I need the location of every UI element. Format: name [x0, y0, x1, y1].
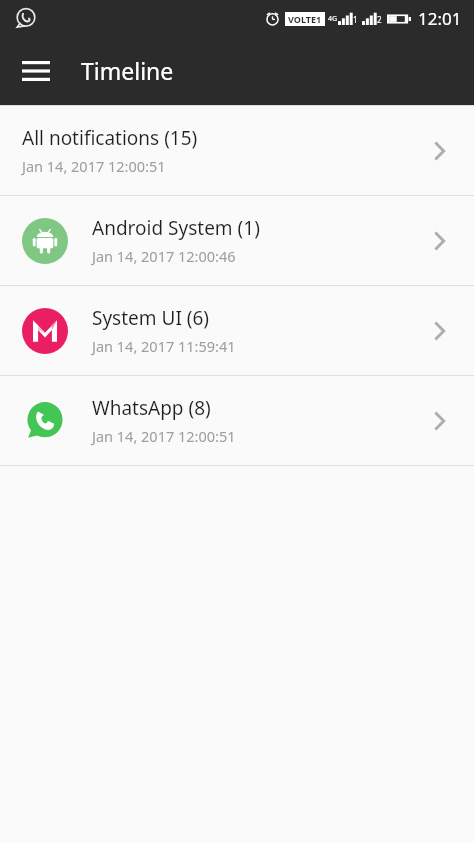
button[interactable]: System UI (6): [0, 286, 474, 375]
staticText: 2: [377, 14, 382, 25]
staticText: All notifications (15): [22, 125, 198, 151]
staticText: Jan 14, 2017 12:00:51: [92, 426, 236, 446]
button[interactable]: All notifications (15): [0, 106, 474, 195]
staticText: Jan 14, 2017 12:00:51: [22, 156, 166, 176]
staticText: 1: [353, 14, 358, 25]
staticText: 4G: [328, 14, 338, 24]
staticText: 12:01: [418, 7, 462, 30]
staticText: VOLTE1: [288, 13, 322, 25]
staticText: WhatsApp (8): [92, 395, 211, 421]
button[interactable]: Android System (1): [0, 196, 474, 285]
staticText: Android System (1): [92, 215, 260, 241]
staticText: Timeline: [81, 55, 174, 86]
button[interactable]: Open navigation menu: [12, 47, 60, 95]
staticText: Jan 14, 2017 12:00:46: [92, 246, 236, 266]
staticText: Jan 14, 2017 11:59:41: [92, 336, 236, 356]
staticText: System UI (6): [92, 305, 210, 331]
button[interactable]: WhatsApp (8): [0, 376, 474, 465]
